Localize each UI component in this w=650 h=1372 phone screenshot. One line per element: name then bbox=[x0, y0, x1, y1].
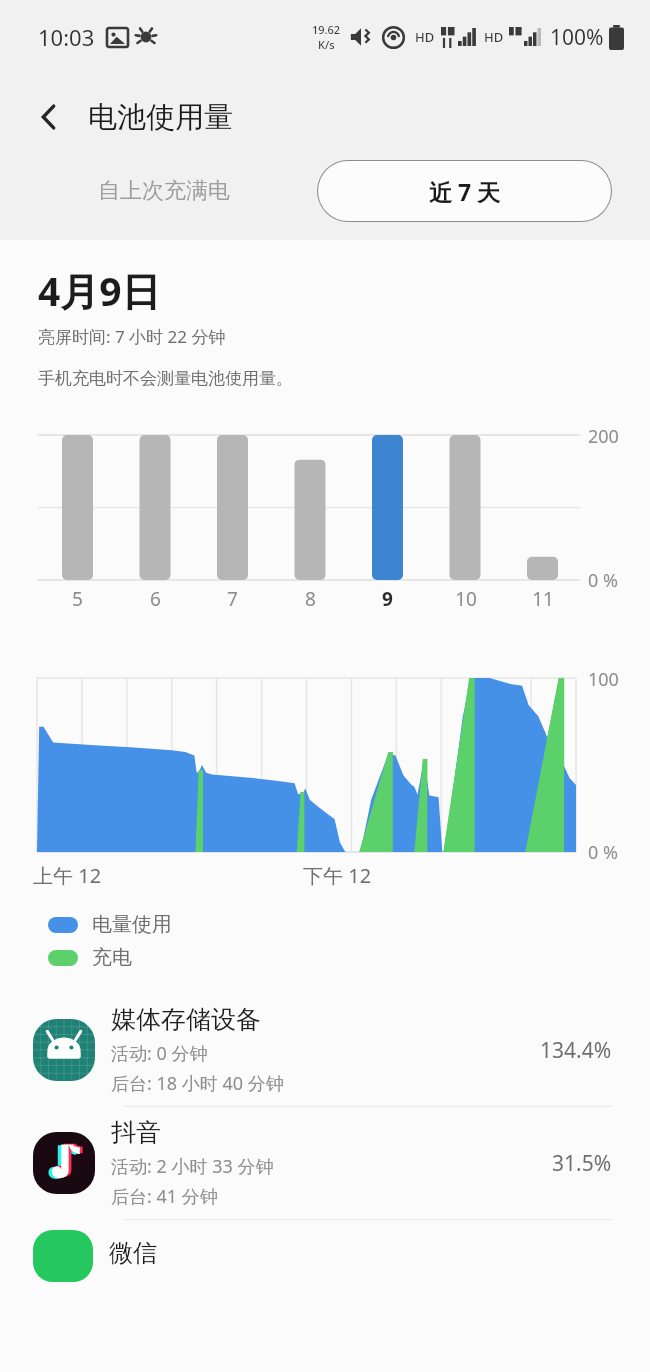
staticText: 4月9日 bbox=[38, 264, 161, 317]
staticText: 134.4% bbox=[540, 1036, 612, 1065]
staticText: HD bbox=[415, 28, 435, 46]
staticText: 上午 12 bbox=[33, 862, 102, 889]
button[interactable]: 近 7 天 bbox=[317, 160, 612, 222]
staticText: 100% bbox=[550, 23, 604, 52]
staticText: HD bbox=[484, 28, 504, 46]
button[interactable]: 抖音 bbox=[0, 1107, 650, 1220]
staticText: 手机充电时不会测量电池使用量。 bbox=[38, 368, 293, 389]
staticText: 200 bbox=[588, 424, 619, 449]
staticText: 10:03 bbox=[38, 22, 95, 52]
staticText: 充电 bbox=[92, 945, 132, 970]
staticText: 9 bbox=[382, 586, 393, 612]
staticText: 8 bbox=[305, 586, 316, 612]
staticText: 31.5% bbox=[552, 1149, 612, 1178]
staticText: 微信 bbox=[109, 1238, 157, 1268]
staticText: 后台: 41 分钟 bbox=[111, 1184, 218, 1209]
staticText: 6 bbox=[150, 586, 161, 612]
staticText: 近 7 天 bbox=[429, 176, 501, 207]
staticText: 7 bbox=[227, 586, 238, 612]
staticText: 后台: 18 小时 40 分钟 bbox=[111, 1071, 284, 1096]
button[interactable]: 自上次充满电 bbox=[24, 160, 303, 222]
staticText: 5 bbox=[72, 586, 83, 612]
staticText: 亮屏时间: 7 小时 22 分钟 bbox=[38, 325, 226, 348]
staticText: 电池使用量 bbox=[88, 99, 233, 136]
staticText: 0 % bbox=[588, 840, 618, 865]
staticText: 活动: 2 小时 33 分钟 bbox=[111, 1154, 274, 1179]
staticText: 下午 12 bbox=[303, 862, 372, 889]
button[interactable]: 媒体存储设备 bbox=[0, 994, 650, 1107]
staticText: 100 bbox=[588, 667, 619, 692]
staticText: 活动: 0 分钟 bbox=[111, 1041, 208, 1066]
staticText: 10 bbox=[455, 586, 477, 612]
staticText: 19.62 bbox=[312, 22, 341, 37]
staticText: 电量使用 bbox=[92, 912, 172, 937]
staticText: 0 % bbox=[588, 568, 618, 593]
staticText: K/s bbox=[318, 37, 335, 52]
staticText: 11 bbox=[532, 586, 554, 612]
button[interactable]: 微信 bbox=[0, 1220, 650, 1282]
staticText: 自上次充满电 bbox=[98, 177, 230, 205]
button[interactable]: 返回 bbox=[22, 90, 76, 144]
staticText: 媒体存储设备 bbox=[111, 1004, 261, 1035]
staticText: 抖音 bbox=[111, 1117, 161, 1148]
